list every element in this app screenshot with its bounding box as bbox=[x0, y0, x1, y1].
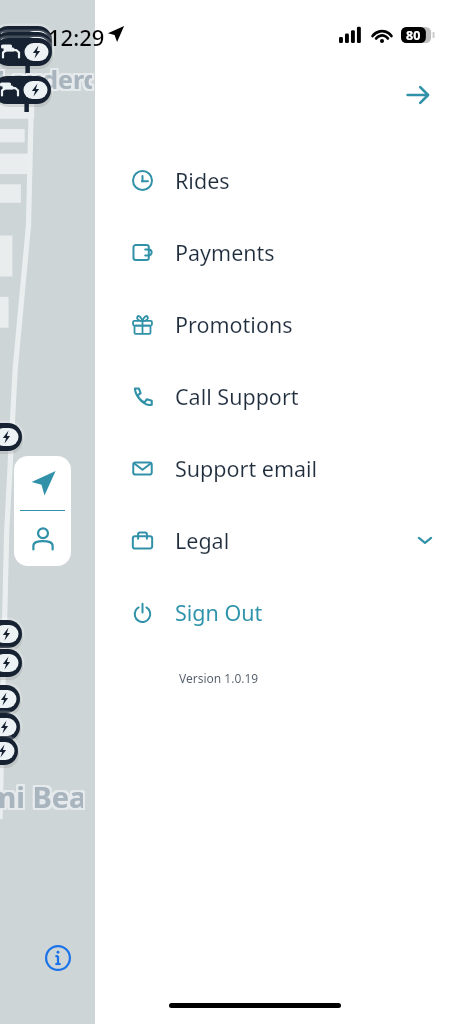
staticText: mi Beach bbox=[0, 779, 85, 818]
staticText: mi Beach bbox=[0, 775, 81, 814]
staticText: mi Beach bbox=[0, 779, 83, 818]
button[interactable]: Promotions bbox=[95, 288, 473, 360]
button[interactable]: My location bbox=[14, 456, 71, 510]
staticText: Lauderdale bbox=[0, 64, 94, 98]
staticText: Lauderdale bbox=[0, 62, 90, 96]
staticText: Promotions bbox=[175, 310, 293, 339]
staticText: Lauderdale bbox=[0, 60, 92, 94]
button[interactable]: Charging station bbox=[0, 710, 32, 752]
staticText: Call Support bbox=[175, 382, 299, 411]
staticText: mi Beach bbox=[0, 779, 81, 818]
button[interactable]: Expand Legal bbox=[405, 520, 445, 560]
staticText: mi Beach bbox=[0, 777, 83, 816]
button[interactable]: Close menu bbox=[395, 72, 441, 118]
staticText: Lauderdale bbox=[0, 64, 92, 98]
staticText: 12:29 bbox=[48, 22, 105, 52]
button[interactable]: Support email bbox=[95, 432, 473, 504]
staticText: Payments bbox=[175, 238, 275, 267]
staticText: Version 1.0.19 bbox=[179, 670, 259, 686]
button[interactable]: Charging station bbox=[0, 646, 34, 688]
staticText: Rides bbox=[175, 166, 230, 195]
button[interactable]: Charging station bbox=[0, 23, 64, 65]
button[interactable]: Charging station bbox=[0, 420, 34, 462]
button[interactable]: Payments bbox=[95, 216, 473, 288]
staticText: Lauderdale bbox=[0, 62, 92, 96]
button[interactable]: Charging station bbox=[0, 35, 64, 77]
staticText: Lauderdale bbox=[0, 62, 94, 96]
staticText: Lauderdale bbox=[0, 64, 90, 98]
staticText: Legal bbox=[175, 526, 230, 555]
staticText: Support email bbox=[175, 454, 318, 483]
button[interactable]: Charging station bbox=[0, 617, 34, 659]
staticText: Sign Out bbox=[175, 598, 263, 627]
button[interactable]: Legal bbox=[95, 504, 473, 576]
button[interactable]: Charging station bbox=[0, 29, 64, 71]
button[interactable]: Rides bbox=[95, 144, 473, 216]
staticText: mi Beach bbox=[0, 777, 85, 816]
button[interactable]: Sign Out bbox=[95, 576, 473, 648]
button[interactable]: Call Support bbox=[95, 360, 473, 432]
staticText: mi Beach bbox=[0, 777, 81, 816]
staticText: Lauderdale bbox=[0, 60, 90, 94]
staticText: mi Beach bbox=[0, 775, 83, 814]
staticText: 80 bbox=[406, 27, 421, 43]
staticText: Lauderdale bbox=[0, 60, 94, 94]
button[interactable]: Charging station bbox=[0, 73, 63, 115]
button[interactable]: Charging station bbox=[0, 734, 30, 776]
button[interactable]: Map info bbox=[45, 945, 71, 971]
button[interactable]: Charging station bbox=[0, 682, 32, 724]
staticText: mi Beach bbox=[0, 775, 85, 814]
button[interactable]: Profile bbox=[14, 512, 71, 566]
